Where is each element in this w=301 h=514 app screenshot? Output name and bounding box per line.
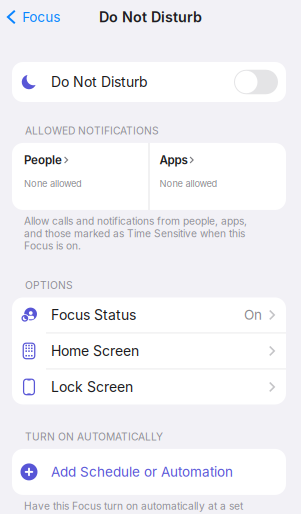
staticText: Lock Screen — [51, 378, 133, 395]
staticText: Add Schedule or Automation — [51, 464, 233, 480]
button[interactable]: Lock Screen — [12, 369, 286, 404]
button[interactable]: Do Not Disturb — [234, 70, 278, 94]
staticText: Allow calls and notifications from peopl… — [24, 215, 247, 252]
staticText: Do Not Disturb — [51, 73, 148, 90]
staticText: None allowed — [159, 178, 217, 189]
button[interactable]: Focus — [0, 4, 68, 30]
staticText: Focus Status — [51, 306, 136, 323]
staticText: ALLOWED NOTIFICATIONS — [25, 124, 159, 137]
button[interactable]: Home Screen — [12, 333, 286, 368]
staticText: Home Screen — [51, 342, 139, 359]
button[interactable]: Add Schedule or Automation — [0, 449, 301, 495]
staticText: On — [244, 307, 262, 323]
staticText: None allowed — [24, 178, 82, 189]
button[interactable]: Focus Status — [12, 297, 286, 332]
staticText: OPTIONS — [25, 279, 73, 291]
staticText: People — [24, 153, 62, 167]
staticText: Do Not Disturb — [99, 8, 202, 26]
staticText: Have this Focus turn on automatically at… — [24, 500, 243, 514]
staticText: TURN ON AUTOMATICALLY — [25, 430, 163, 443]
staticText: Focus — [22, 9, 60, 25]
button[interactable]: Apps — [149, 143, 286, 210]
button[interactable]: People — [12, 143, 148, 210]
staticText: Apps — [159, 153, 187, 167]
